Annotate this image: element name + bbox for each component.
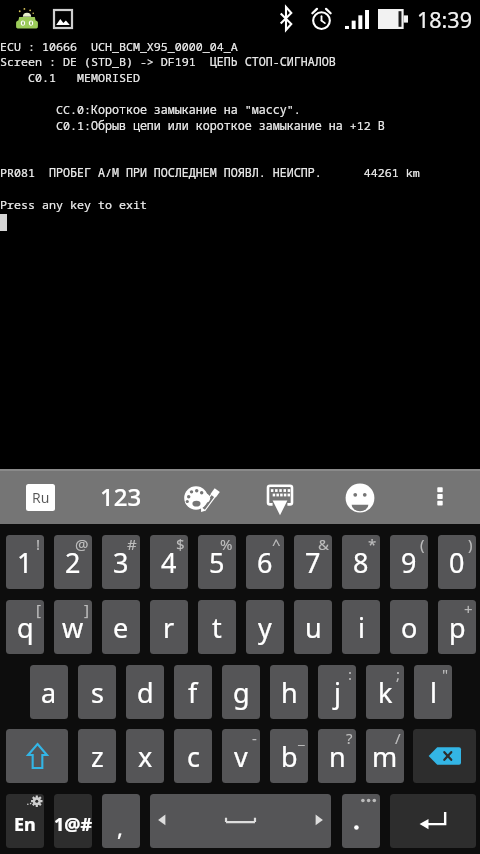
staticText: / — [395, 729, 401, 748]
button[interactable]: z — [78, 729, 116, 783]
button[interactable]: a — [30, 665, 68, 719]
staticText: 1 — [17, 544, 33, 581]
button[interactable]: v — [222, 729, 260, 783]
staticText: x — [138, 738, 153, 775]
button[interactable]: c — [174, 729, 212, 783]
staticText: ( — [420, 535, 425, 554]
staticText: v — [234, 738, 248, 775]
staticText: a — [41, 674, 57, 711]
staticText: 1@# — [54, 812, 92, 837]
staticText: 2 — [65, 544, 81, 581]
button[interactable]: 2 — [54, 535, 92, 589]
button[interactable] — [342, 794, 380, 848]
other: Space — [150, 794, 331, 848]
staticText: 5 — [209, 544, 225, 581]
button[interactable]: 8 — [342, 535, 380, 589]
button[interactable]: Space — [150, 794, 331, 848]
button[interactable]: 6 — [246, 535, 284, 589]
button[interactable]: Backspace — [413, 729, 476, 783]
staticText: ^ — [272, 535, 281, 554]
staticText: i — [358, 609, 365, 646]
staticText: 8 — [353, 544, 369, 581]
button[interactable]: 5 — [198, 535, 236, 589]
staticText: _ — [298, 729, 305, 748]
button[interactable]: Theme — [176, 478, 216, 518]
staticText: PR081 ПРОБЕГ А/М ПРИ ПОСЛЕДНЕМ ПОЯВЛ. НЕ… — [0, 165, 420, 181]
button[interactable]: r — [150, 600, 188, 654]
button[interactable]: More options — [422, 478, 458, 514]
button[interactable]: s — [78, 665, 116, 719]
button[interactable]: 4 — [150, 535, 188, 589]
staticText: Press any key to exit — [0, 197, 147, 213]
staticText: ] — [84, 600, 89, 619]
button[interactable]: q — [6, 600, 44, 654]
staticText: f — [188, 674, 198, 711]
staticText: e — [113, 609, 129, 646]
button[interactable]: 1@# — [54, 794, 92, 848]
button[interactable]: 123 — [92, 479, 150, 513]
button[interactable]: 1 — [6, 535, 44, 589]
button[interactable]: x — [126, 729, 164, 783]
button[interactable]: 3 — [102, 535, 140, 589]
staticText: : — [348, 665, 353, 684]
button[interactable]: Emoji — [340, 478, 380, 518]
button[interactable]: h — [270, 665, 308, 719]
staticText: n — [329, 738, 346, 775]
staticText: z — [91, 738, 104, 775]
staticText: + — [464, 600, 473, 619]
staticText: # — [127, 535, 137, 554]
button[interactable]: , — [102, 794, 140, 848]
button[interactable]: i — [342, 600, 380, 654]
staticText: o — [401, 609, 418, 646]
staticText: [ — [36, 600, 41, 619]
button[interactable]: 0 — [438, 535, 476, 589]
staticText: * — [368, 535, 377, 554]
staticText: ! — [36, 535, 41, 554]
button[interactable]: n — [318, 729, 356, 783]
button[interactable]: y — [246, 600, 284, 654]
button[interactable]: u — [294, 600, 332, 654]
staticText: % — [220, 535, 233, 554]
button[interactable]: p — [438, 600, 476, 654]
staticText: ECU : 10666 UCH_BCM_X95_0000_04_A — [0, 39, 238, 55]
button[interactable]: Hide keyboard — [260, 478, 300, 518]
button[interactable]: 9 — [390, 535, 428, 589]
staticText: s — [91, 674, 104, 711]
button[interactable]: Shift — [6, 729, 68, 783]
staticText: Ru — [32, 488, 50, 507]
button[interactable]: e — [102, 600, 140, 654]
staticText: , — [117, 812, 123, 842]
button[interactable]: Ru — [26, 484, 55, 511]
button[interactable]: m — [366, 729, 404, 783]
staticText: h — [281, 674, 298, 711]
staticText: CC.0:Короткое замыкание на "массу". — [0, 102, 301, 118]
staticText: g — [233, 674, 250, 711]
button[interactable]: k — [366, 665, 404, 719]
button[interactable]: w — [54, 600, 92, 654]
button[interactable]: g — [222, 665, 260, 719]
button[interactable]: En — [6, 794, 44, 848]
button[interactable]: 7 — [294, 535, 332, 589]
button[interactable]: f — [174, 665, 212, 719]
other: Shift — [27, 743, 48, 769]
button[interactable]: t — [198, 600, 236, 654]
button[interactable]: o — [390, 600, 428, 654]
staticText: r — [163, 609, 175, 646]
staticText: 6 — [257, 544, 273, 581]
button[interactable]: b — [270, 729, 308, 783]
staticText: k — [378, 674, 393, 711]
staticText: q — [17, 609, 34, 646]
button[interactable]: Enter — [390, 794, 476, 848]
button[interactable]: d — [126, 665, 164, 719]
staticText: Screen : DE (STD_B) -> DF191 ЦЕПЬ СТОП-С… — [0, 54, 336, 70]
staticText: ? — [346, 729, 353, 748]
staticText: p — [449, 609, 466, 646]
staticText: C0.1 MEMORISED — [0, 70, 140, 86]
staticText: 3 — [113, 544, 129, 581]
staticText: ) — [468, 535, 473, 554]
staticText: $ — [176, 535, 185, 554]
staticText: m — [372, 738, 398, 775]
button[interactable]: l — [414, 665, 452, 719]
staticText: En — [14, 812, 36, 837]
button[interactable]: j — [318, 665, 356, 719]
